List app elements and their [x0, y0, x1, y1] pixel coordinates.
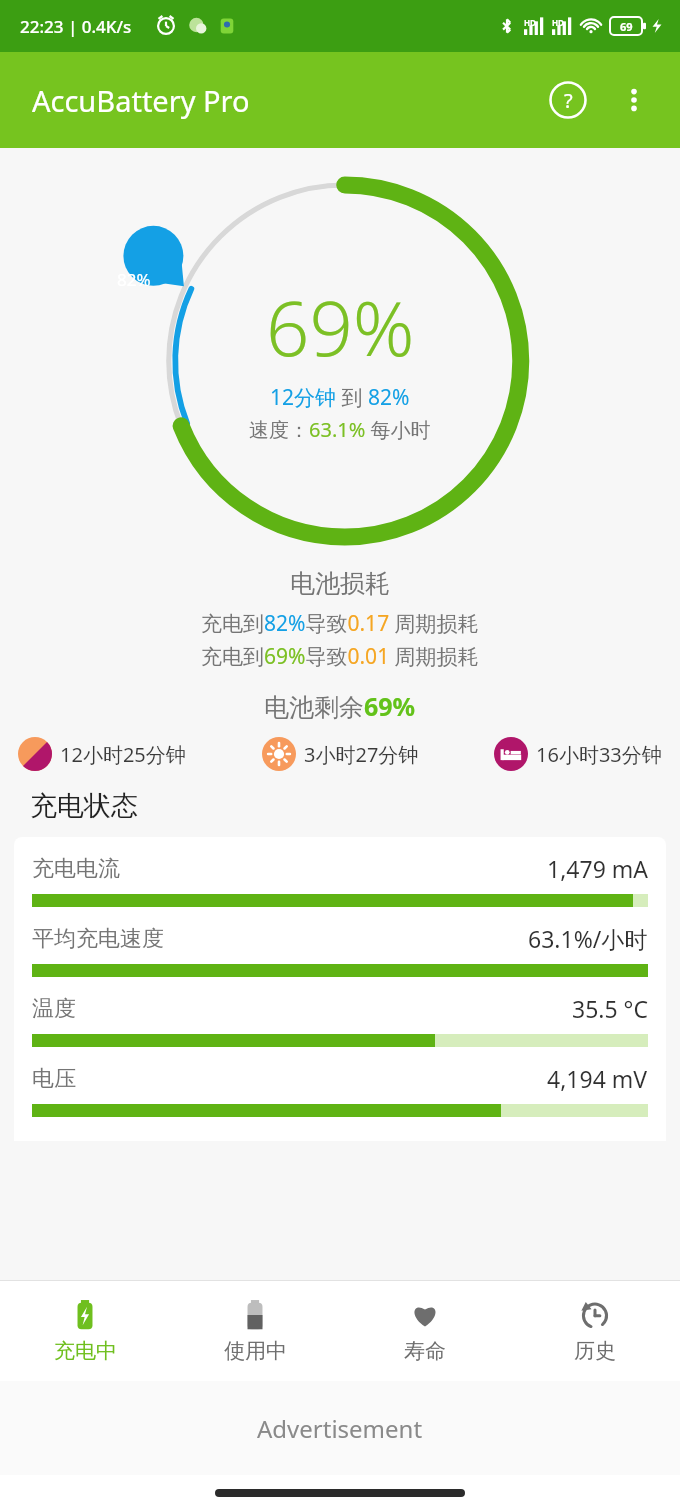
button[interactable]: 平均充电速度 — [32, 923, 648, 993]
staticText: 12分钟 到 82% — [270, 383, 410, 412]
staticText: 69% — [266, 275, 415, 379]
staticText: 电池损耗 — [290, 568, 390, 599]
staticText: 电池剩余69% — [264, 689, 416, 723]
button[interactable]: 充电中 — [0, 1281, 170, 1381]
staticText: 充电中 — [54, 1338, 117, 1364]
button[interactable]: 使用中 — [170, 1281, 340, 1381]
staticText: 充电电流 — [32, 855, 120, 883]
staticText: 82% — [117, 268, 151, 291]
button[interactable]: 电压 — [32, 1063, 648, 1133]
staticText: HD — [552, 17, 564, 28]
staticText: ? — [564, 87, 573, 114]
staticText: Advertisement — [257, 1412, 423, 1445]
staticText: 35.5 °C — [572, 993, 648, 1024]
button[interactable]: 温度 — [32, 993, 648, 1063]
staticText: HD — [524, 17, 536, 28]
staticText: 速度：63.1% 每小时 — [249, 416, 431, 443]
button[interactable]: 寿命 — [340, 1281, 510, 1381]
staticText: 温度 — [32, 995, 76, 1023]
button[interactable]: 历史 — [510, 1281, 680, 1381]
staticText: 12小时25分钟 — [60, 741, 186, 768]
staticText: 充电到69%导致0.01 周期损耗 — [201, 642, 479, 671]
staticText: 电压 — [32, 1065, 76, 1093]
staticText: 充电状态 — [30, 789, 138, 823]
button[interactable]: More options — [610, 76, 658, 124]
staticText: 4,194 mV — [547, 1063, 648, 1094]
button[interactable]: 12小时25分钟 — [18, 737, 186, 771]
staticText: 69 — [620, 19, 633, 34]
button[interactable]: 充电电流 — [32, 853, 648, 923]
button[interactable]: 3小时27分钟 — [262, 737, 419, 771]
staticText: 充电到82%导致0.17 周期损耗 — [201, 609, 479, 638]
button[interactable]: Advertisement — [0, 1381, 680, 1475]
staticText: 寿命 — [404, 1338, 446, 1364]
button[interactable]: Help — [542, 74, 594, 126]
staticText: 平均充电速度 — [32, 925, 164, 953]
staticText: 22:23 | 0.4K/s — [20, 15, 132, 38]
staticText: 1,479 mA — [547, 853, 648, 884]
staticText: 16小时33分钟 — [536, 741, 662, 768]
staticText: AccuBattery Pro — [32, 81, 250, 120]
staticText: 历史 — [574, 1338, 616, 1364]
staticText: 使用中 — [224, 1338, 287, 1364]
staticText: 63.1%/小时 — [528, 923, 648, 954]
button[interactable]: 16小时33分钟 — [494, 737, 662, 771]
staticText: 3小时27分钟 — [304, 741, 419, 768]
